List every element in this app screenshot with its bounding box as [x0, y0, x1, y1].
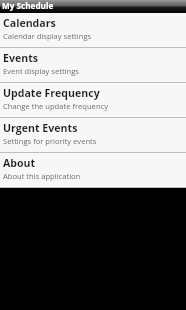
staticText: Change the update frequency	[3, 101, 108, 111]
staticText: Calendars	[3, 16, 56, 30]
staticText: About this application	[3, 171, 81, 181]
button[interactable]: Calendars	[0, 13, 186, 48]
staticText: My Schedule	[2, 0, 54, 11]
button[interactable]: Urgent Events	[0, 118, 186, 153]
staticText: About	[3, 156, 36, 170]
staticText: Events	[3, 51, 39, 65]
staticText: Event display settings	[3, 66, 79, 76]
staticText: Update Frequency	[3, 86, 100, 100]
staticText: Settings for priority events	[3, 136, 97, 146]
staticText: Calendar display settings	[3, 31, 92, 41]
button[interactable]: About	[0, 153, 186, 188]
button[interactable]: Update Frequency	[0, 83, 186, 118]
button[interactable]: Events	[0, 48, 186, 83]
staticText: Urgent Events	[3, 121, 78, 135]
